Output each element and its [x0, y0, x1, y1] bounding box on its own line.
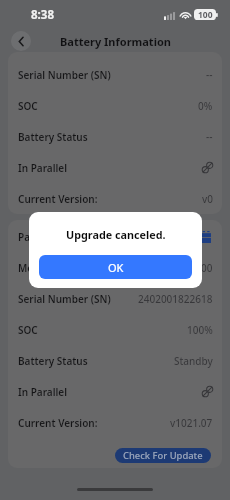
staticText: In Parallel — [18, 385, 68, 399]
button[interactable]: SOC — [8, 90, 222, 121]
staticText: Battery Information — [60, 34, 171, 49]
staticText: Pack Info — [18, 230, 64, 244]
staticText: Model — [18, 261, 49, 275]
button[interactable]: Current Version: — [8, 183, 222, 214]
button[interactable]: OK — [39, 255, 192, 279]
staticText: 2402001822618 — [138, 292, 213, 306]
staticText: v1021.07 — [170, 416, 213, 430]
button[interactable]: Pack Info — [8, 221, 222, 252]
staticText: Current Version: — [18, 416, 98, 430]
button[interactable]: Current Version: — [8, 407, 222, 438]
button[interactable]: In Parallel — [8, 152, 222, 183]
staticText: 8:38 — [31, 7, 54, 23]
staticText: In Parallel — [18, 161, 68, 175]
staticText: -- — [206, 68, 213, 82]
staticText: 0% — [198, 99, 213, 113]
staticText: OK — [108, 260, 124, 275]
staticText: -- — [206, 130, 213, 144]
staticText: 00 — [201, 261, 213, 275]
button[interactable]: Serial Number (SN) — [8, 283, 222, 314]
staticText: 100% — [187, 323, 213, 337]
staticText: Standby — [174, 354, 213, 368]
staticText: SOC — [18, 99, 38, 113]
staticText: SOC — [18, 323, 38, 337]
staticText: v0 — [202, 192, 213, 206]
button[interactable]: Battery Status — [8, 121, 222, 152]
button[interactable]: Serial Number (SN) — [8, 59, 222, 90]
staticText: Upgrade canceled. — [66, 227, 166, 242]
staticText: Current Version: — [18, 192, 98, 206]
button[interactable]: Battery Status — [8, 345, 222, 376]
staticText: Check For Update — [123, 449, 203, 462]
staticText: Battery Status — [18, 354, 88, 368]
other: Battery — [202, 231, 211, 243]
staticText: Serial Number (SN) — [18, 292, 111, 306]
button[interactable]: SOC — [8, 314, 222, 345]
staticText: Battery Status — [18, 130, 88, 144]
button[interactable]: Back — [11, 31, 31, 51]
button[interactable]: In Parallel — [8, 376, 222, 407]
button[interactable]: Check For Update — [115, 448, 211, 463]
button[interactable]: Model — [8, 252, 222, 283]
staticText: Serial Number (SN) — [18, 68, 111, 82]
staticText: 100 — [198, 9, 213, 20]
